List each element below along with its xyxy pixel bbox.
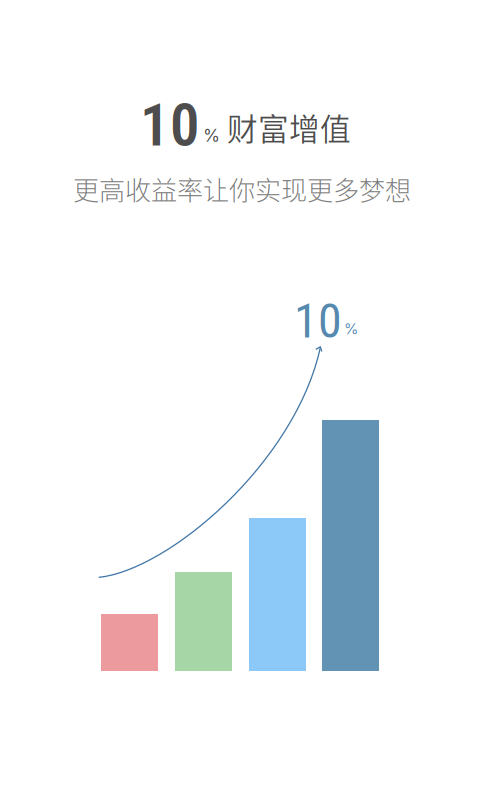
- staticText: %: [203, 125, 220, 146]
- staticText: 10: [140, 91, 200, 160]
- staticText: %: [344, 320, 358, 338]
- staticText: 更高收益率让你实现更多梦想: [73, 170, 411, 208]
- staticText: 财富增值: [227, 105, 351, 149]
- staticText: 10: [294, 293, 342, 349]
